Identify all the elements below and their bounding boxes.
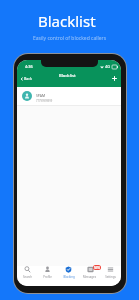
staticText: 4G (105, 64, 111, 69)
button[interactable]: Add to blacklist (111, 75, 118, 82)
staticText: Search (23, 275, 32, 279)
staticText: Easily control of blocked callers (33, 35, 107, 42)
staticText: Blacklist (38, 11, 96, 31)
button[interactable]: NEW (79, 266, 100, 279)
staticText: NEW (94, 266, 101, 270)
staticText: Blacklist (59, 73, 76, 79)
button[interactable]: Back (20, 76, 32, 81)
button[interactable]: SPAM (17, 87, 121, 105)
staticText: Messages (83, 275, 96, 279)
button[interactable]: Settings (100, 266, 121, 279)
button[interactable]: Search (17, 266, 37, 279)
button[interactable]: Blocking (58, 266, 79, 279)
staticText: SPAM (36, 93, 45, 98)
button[interactable]: Profile (37, 266, 58, 279)
staticText: Profile (43, 275, 52, 279)
staticText: Settings (105, 275, 116, 279)
staticText: 4:36 (25, 64, 33, 69)
staticText: Blocking (63, 275, 75, 279)
staticText: Back (24, 76, 32, 81)
staticText: 77799999999 (36, 99, 53, 103)
